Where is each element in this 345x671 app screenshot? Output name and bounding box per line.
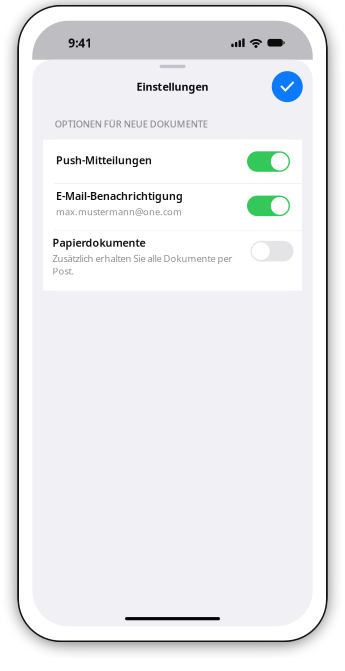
- staticText: Einstellungen: [136, 80, 208, 94]
- staticText: OPTIONEN FÜR NEUE DOKUMENTE: [55, 118, 208, 130]
- button[interactable]: Ein: [247, 196, 290, 216]
- staticText: Push-Mitteilungen: [56, 153, 152, 167]
- staticText: E-Mail-Benachrichtigung: [56, 189, 183, 203]
- button[interactable]: Papierdokumente: [43, 231, 302, 290]
- button[interactable]: Fertig: [272, 71, 303, 102]
- staticText: 9:41: [68, 35, 92, 51]
- button[interactable]: Push-Mitteilungen: [43, 140, 302, 183]
- button[interactable]: Ein: [247, 151, 290, 172]
- staticText: Papierdokumente: [52, 236, 145, 250]
- staticText: Zusätzlich erhalten Sie alle Dokumente p…: [52, 252, 232, 277]
- button[interactable]: Aus: [250, 241, 293, 261]
- button[interactable]: E-Mail-Benachrichtigung: [43, 184, 302, 231]
- staticText: max.mustermann@one.com: [56, 205, 182, 218]
